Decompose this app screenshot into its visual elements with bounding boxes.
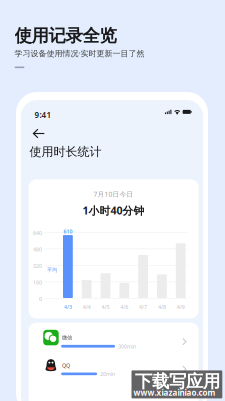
button[interactable]: Back: [32, 127, 48, 139]
staticText: 学习设备使用情况·实时更新一目了然: [14, 48, 144, 59]
staticText: 平均: [47, 267, 57, 273]
button[interactable]: 微信: [29, 323, 199, 350]
staticText: 0: [39, 295, 42, 302]
staticText: 480: [33, 246, 42, 253]
staticText: 4/3: [64, 303, 72, 310]
staticText: QQ: [62, 362, 70, 369]
staticText: 4/5: [101, 303, 109, 310]
staticText: www.xiazainiao.com: [133, 387, 215, 398]
staticText: 下载写应用: [135, 371, 220, 392]
staticText: 640: [33, 229, 42, 236]
staticText: 4/8: [158, 303, 166, 310]
button[interactable]: QQ: [29, 350, 199, 378]
staticText: 320: [33, 262, 42, 269]
staticText: 4/4: [83, 303, 91, 310]
staticText: 20min: [100, 370, 115, 377]
staticText: 使用时长统计: [29, 144, 101, 159]
staticText: 使用记录全览: [14, 25, 116, 46]
staticText: 300min: [118, 343, 136, 350]
staticText: 4/9: [177, 303, 185, 310]
staticText: 7月10日今日: [94, 190, 134, 199]
staticText: 9:41: [34, 109, 51, 120]
staticText: 160: [33, 279, 42, 286]
staticText: 610: [63, 228, 72, 235]
staticText: 1小时40分钟: [83, 203, 145, 218]
staticText: 4/6: [120, 303, 128, 310]
staticText: 微信: [62, 334, 72, 341]
staticText: 4/7: [139, 303, 147, 310]
